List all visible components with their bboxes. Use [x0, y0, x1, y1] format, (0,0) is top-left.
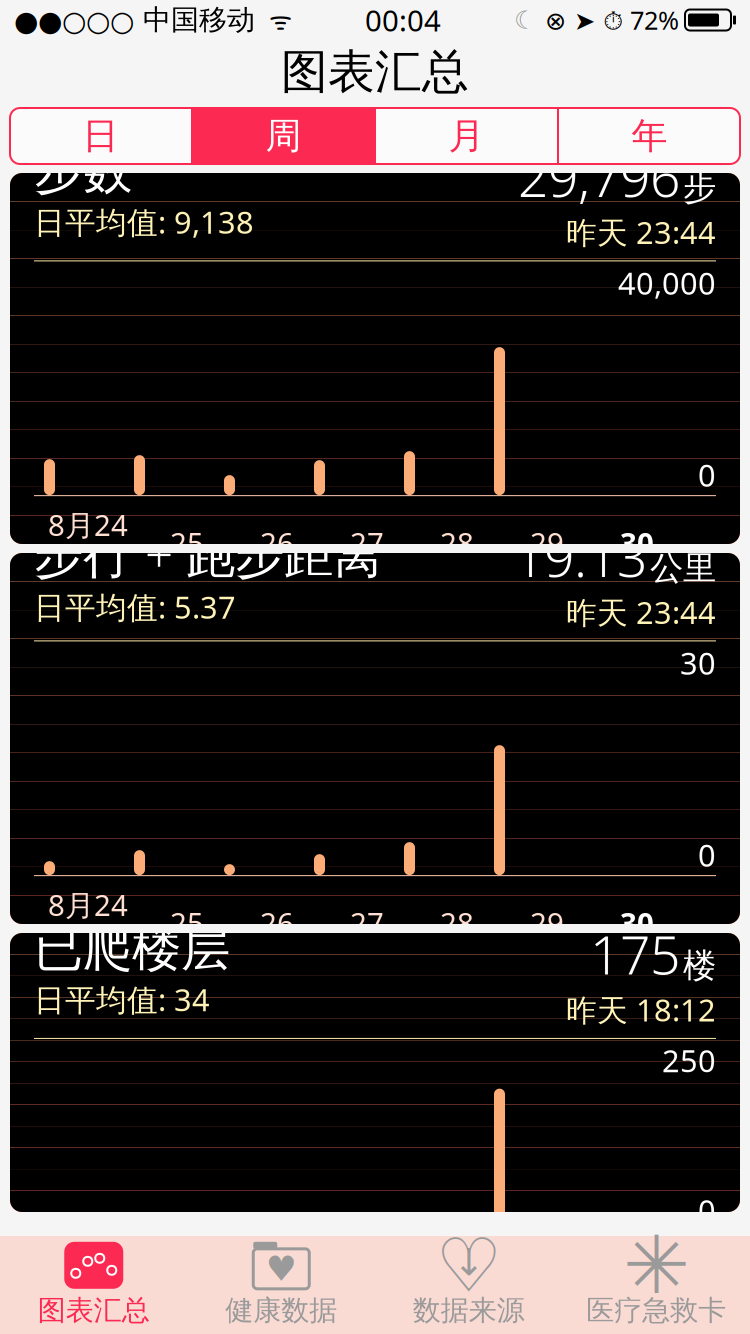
button[interactable]: Health Data	[187, 1236, 375, 1334]
button[interactable]: 步行 + 跑步距离	[10, 553, 740, 924]
staticText: 图表汇总	[281, 43, 469, 101]
staticText: 医疗急救卡	[586, 1293, 726, 1328]
staticText: 周	[265, 114, 301, 158]
staticText: 数据来源	[413, 1293, 525, 1328]
staticText: 年	[631, 114, 667, 158]
staticText: ᯤ	[255, 3, 292, 37]
staticText: ↓	[453, 1241, 484, 1283]
staticText: 0	[698, 454, 716, 495]
staticText: ⊗ ➤ ⏱ 72%	[537, 3, 679, 37]
staticText: 图表汇总	[38, 1293, 150, 1328]
staticText: 日平均值: 5.37	[34, 586, 236, 627]
staticText: 步行 + 跑步距离	[34, 521, 382, 586]
staticText: 昨天 23:44	[566, 212, 716, 252]
staticText: ●●○○○ 中国移动	[14, 3, 255, 37]
staticText: 00:04	[365, 0, 441, 39]
staticText: 250	[662, 1040, 716, 1081]
button[interactable]: 年	[559, 108, 740, 164]
staticText: 8月24日	[48, 505, 128, 580]
staticText: 27	[350, 903, 384, 942]
staticText: 30	[680, 642, 716, 683]
button[interactable]: Charts Summary	[0, 1236, 187, 1334]
staticText: 月	[448, 114, 484, 158]
staticText: 19.13	[514, 521, 647, 592]
staticText: 日平均值: 9,138	[34, 201, 254, 242]
staticText: ✳	[623, 1220, 690, 1311]
staticText: 29,796	[518, 141, 680, 212]
staticText: 28	[440, 523, 474, 562]
staticText: 40,000	[618, 262, 716, 303]
staticText: 步	[683, 168, 716, 209]
staticText: 昨天 23:44	[566, 592, 716, 632]
staticText: 健康数据	[225, 1293, 337, 1328]
staticText: 日平均值: 34	[34, 979, 210, 1020]
staticText: 昨天 18:12	[566, 989, 716, 1030]
staticText: 27	[350, 523, 384, 562]
staticText: ♡	[435, 1223, 502, 1308]
staticText: 30	[620, 523, 654, 562]
staticText: 步数	[34, 141, 132, 201]
staticText: 30	[620, 903, 654, 942]
button[interactable]: Medical ID	[562, 1236, 750, 1334]
button[interactable]: 步数	[10, 173, 740, 544]
staticText: 已爬楼层	[34, 918, 230, 979]
staticText: 29	[530, 523, 564, 562]
staticText: ♥	[266, 1249, 297, 1288]
staticText: 日	[82, 114, 118, 158]
staticText: 0	[698, 834, 716, 875]
button[interactable]: 周	[193, 108, 374, 164]
button[interactable]: 日	[10, 108, 191, 164]
staticText: 0	[698, 1190, 716, 1231]
button[interactable]: Data Sources	[375, 1236, 562, 1334]
staticText: 8月24日	[48, 885, 128, 960]
staticText: 29	[530, 903, 564, 942]
button[interactable]: 已爬楼层	[10, 933, 740, 1212]
staticText: 公里	[650, 548, 716, 589]
staticText: 25	[170, 903, 204, 942]
staticText: ☾	[514, 6, 537, 34]
staticText: 楼	[683, 945, 716, 986]
staticText: 26	[260, 523, 294, 562]
staticText: 25	[170, 523, 204, 562]
staticText: 26	[260, 903, 294, 942]
staticText: 175	[590, 918, 680, 989]
staticText: 28	[440, 903, 474, 942]
button[interactable]: 月	[376, 108, 557, 164]
